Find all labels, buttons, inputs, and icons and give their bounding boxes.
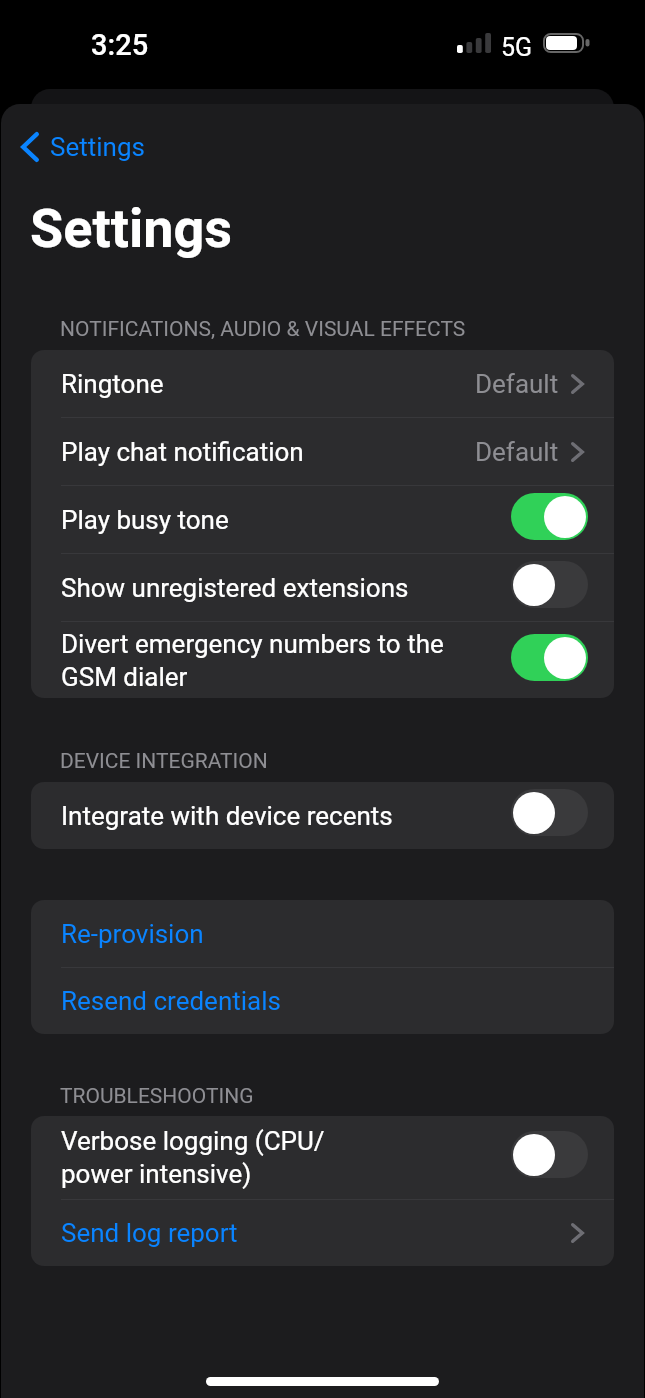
button[interactable]: Ringtone [31,350,614,417]
staticText: Settings [30,197,233,260]
staticText: DEVICE INTEGRATION [60,749,268,774]
staticText: Ringtone [61,369,164,399]
button[interactable]: Resend credentials [31,968,614,1034]
staticText: Resend credentials [61,986,584,1016]
staticText: 3:25 [91,28,149,62]
button[interactable]: Send log report [31,1200,614,1266]
button[interactable]: Switch off [511,789,588,836]
staticText: Play chat notification [61,437,304,467]
staticText: Play busy tone [61,505,229,535]
button[interactable]: Switch on [511,634,588,681]
button[interactable]: Switch on [511,493,588,540]
button[interactable]: Switch off [511,561,588,608]
button[interactable]: Re-provision [31,900,614,967]
staticText: 5G [501,33,533,62]
button[interactable]: Play chat notification [31,418,614,485]
staticText: Send log report [61,1218,571,1248]
staticText: Default [475,369,559,399]
button[interactable]: Play busy tone [31,486,614,553]
staticText: Integrate with device recents [61,801,393,831]
button[interactable]: Switch off [511,1131,588,1178]
staticText: Divert emergency numbers to the GSM dial… [61,629,444,692]
other: Back [21,132,39,162]
staticText: Re-provision [61,919,584,949]
staticText: NOTIFICATIONS, AUDIO & VISUAL EFFECTS [60,317,466,342]
button[interactable]: Verbose logging (CPU/ power intensive) [31,1116,614,1199]
staticText: Verbose logging (CPU/ power intensive) [61,1126,325,1189]
button[interactable]: Show unregistered extensions [31,554,614,621]
staticText: TROUBLESHOOTING [60,1084,254,1109]
staticText: Settings [50,132,145,162]
button[interactable]: Divert emergency numbers to the GSM dial… [31,622,614,698]
staticText: Default [475,437,559,467]
button[interactable]: Integrate with device recents [31,782,614,849]
staticText: Show unregistered extensions [61,573,409,603]
button[interactable]: Back [6,118,196,176]
